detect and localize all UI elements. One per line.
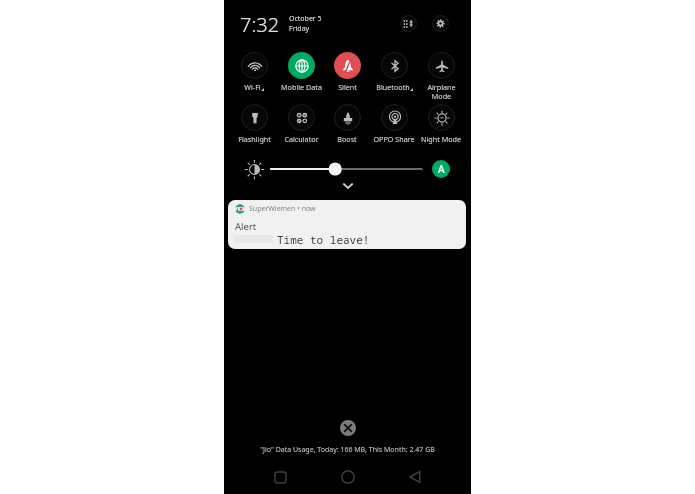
button[interactable]: Clear all notifications xyxy=(340,420,356,436)
staticText: October 5 xyxy=(289,14,322,24)
button[interactable]: Wi-Fi xyxy=(231,52,277,92)
staticText: Bluetooth xyxy=(376,82,410,92)
staticText: Calculator xyxy=(284,134,319,144)
button[interactable]: Home xyxy=(335,464,361,490)
button[interactable]: Boost xyxy=(324,104,370,144)
staticText: "Jio" Data Usage, Today: 166 MB, This Mo… xyxy=(224,445,471,455)
staticText: Alert xyxy=(235,220,257,233)
staticText: A xyxy=(438,162,445,176)
button[interactable]: Airplane Mode xyxy=(418,52,464,101)
button[interactable]: Edit tiles xyxy=(400,15,417,32)
staticText: Wi-Fi xyxy=(244,82,261,92)
button[interactable]: Back xyxy=(402,464,428,490)
staticText: Time to leave! xyxy=(277,232,370,247)
button[interactable]: Night Mode xyxy=(418,104,464,144)
staticText: Night Mode xyxy=(421,134,461,144)
staticText: Boost xyxy=(337,134,357,144)
button[interactable]: Silent xyxy=(324,52,370,92)
button[interactable]: Auto brightness xyxy=(432,160,450,178)
button[interactable]: Brightness xyxy=(245,160,264,179)
button[interactable]: Brightness slider xyxy=(268,160,425,178)
button[interactable]: Expand xyxy=(341,181,355,191)
button[interactable]: Bluetooth xyxy=(371,52,417,92)
button[interactable]: Flashlight xyxy=(231,104,277,144)
staticText: Mobile Data xyxy=(281,82,322,92)
button[interactable]: SuperWiemen • now xyxy=(228,200,466,249)
button[interactable]: OPPO Share xyxy=(371,104,417,144)
staticText: Airplane Mode xyxy=(427,82,456,101)
staticText: Flashlight xyxy=(238,134,271,144)
staticText: Friday xyxy=(289,24,310,34)
staticText: 7:32 xyxy=(240,11,280,38)
staticText: OPPO Share xyxy=(373,134,415,144)
button[interactable]: Settings xyxy=(432,15,449,32)
button[interactable]: Calculator xyxy=(278,104,324,144)
staticText: SuperWiemen • now xyxy=(249,204,316,214)
button[interactable]: Recents xyxy=(267,464,293,490)
staticText: Silent xyxy=(338,82,357,92)
button[interactable]: Mobile Data xyxy=(278,52,324,92)
